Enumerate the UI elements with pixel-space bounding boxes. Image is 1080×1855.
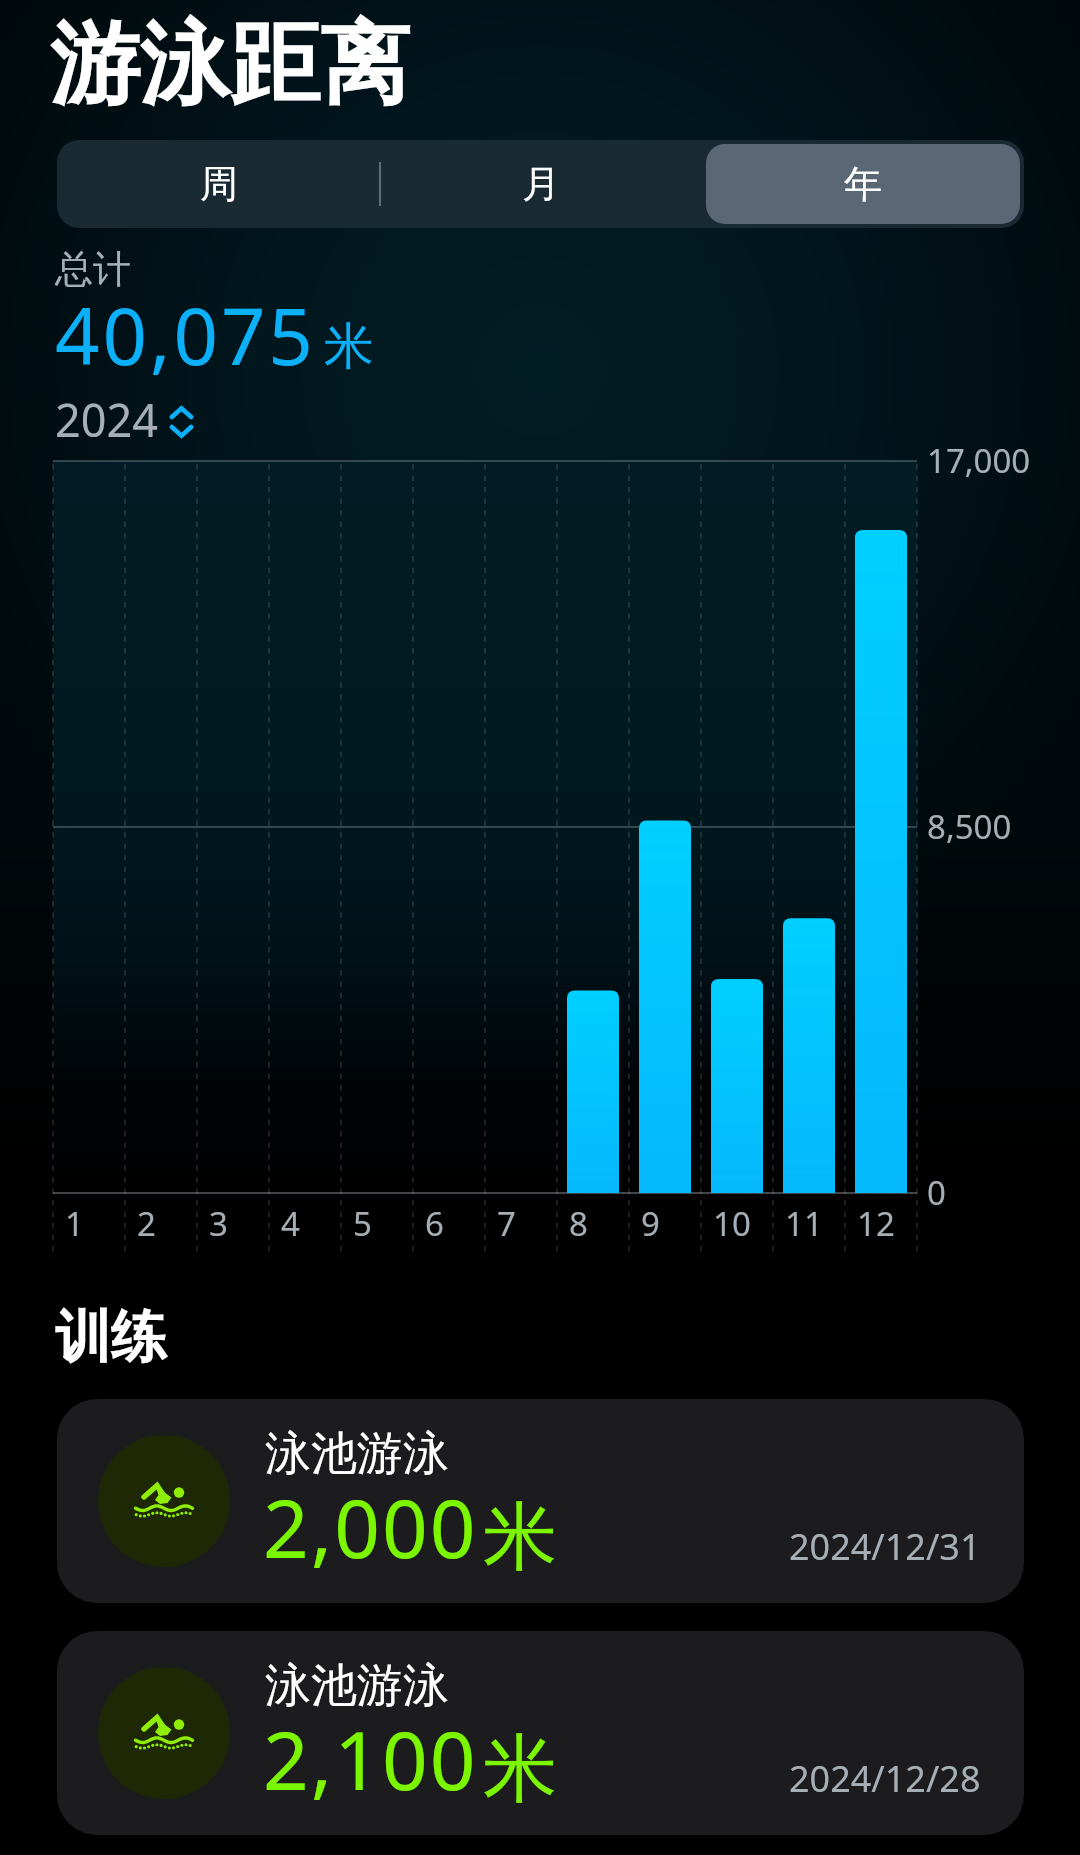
staticText: 2,100 [263, 1704, 478, 1813]
staticText: 5 [353, 1201, 372, 1246]
button[interactable]: 泳池游泳 [57, 1399, 1024, 1603]
staticText: 2024/12/31 [789, 1522, 981, 1571]
staticText: 总计 [55, 245, 131, 293]
button[interactable]: 年 [706, 144, 1020, 224]
staticText: 12 [857, 1201, 895, 1246]
staticText: 4 [281, 1201, 300, 1246]
staticText: 游泳距离 [50, 8, 410, 121]
staticText: 1 [65, 1201, 84, 1246]
staticText: 10 [713, 1201, 751, 1246]
staticText: 0 [927, 1170, 946, 1215]
staticText: 17,000 [927, 438, 1031, 483]
staticText: 月 [522, 160, 560, 208]
staticText: 2,000 [263, 1472, 478, 1581]
staticText: 2024/12/28 [789, 1754, 981, 1803]
staticText: 米 [483, 1491, 557, 1584]
staticText: 8 [569, 1201, 588, 1246]
staticText: 周 [200, 160, 238, 208]
staticText: 米 [324, 315, 374, 378]
staticText: 9 [641, 1201, 660, 1246]
staticText: 7 [497, 1201, 516, 1246]
staticText: 11 [785, 1201, 823, 1246]
staticText: 2024 [55, 389, 158, 450]
button[interactable]: 泳池游泳 [57, 1631, 1024, 1835]
staticText: 年 [844, 160, 882, 208]
staticText: 训练 [55, 1302, 167, 1373]
staticText: 泳池游泳 [265, 1425, 449, 1483]
staticText: 6 [425, 1201, 444, 1246]
staticText: 米 [483, 1723, 557, 1816]
button[interactable]: 月 [384, 144, 698, 224]
staticText: 3 [209, 1201, 228, 1246]
button[interactable]: 周 [61, 144, 376, 224]
staticText: 泳池游泳 [265, 1657, 449, 1715]
staticText: 2 [137, 1201, 156, 1246]
staticText: 40,075 [55, 282, 316, 388]
staticText: 8,500 [927, 804, 1012, 849]
